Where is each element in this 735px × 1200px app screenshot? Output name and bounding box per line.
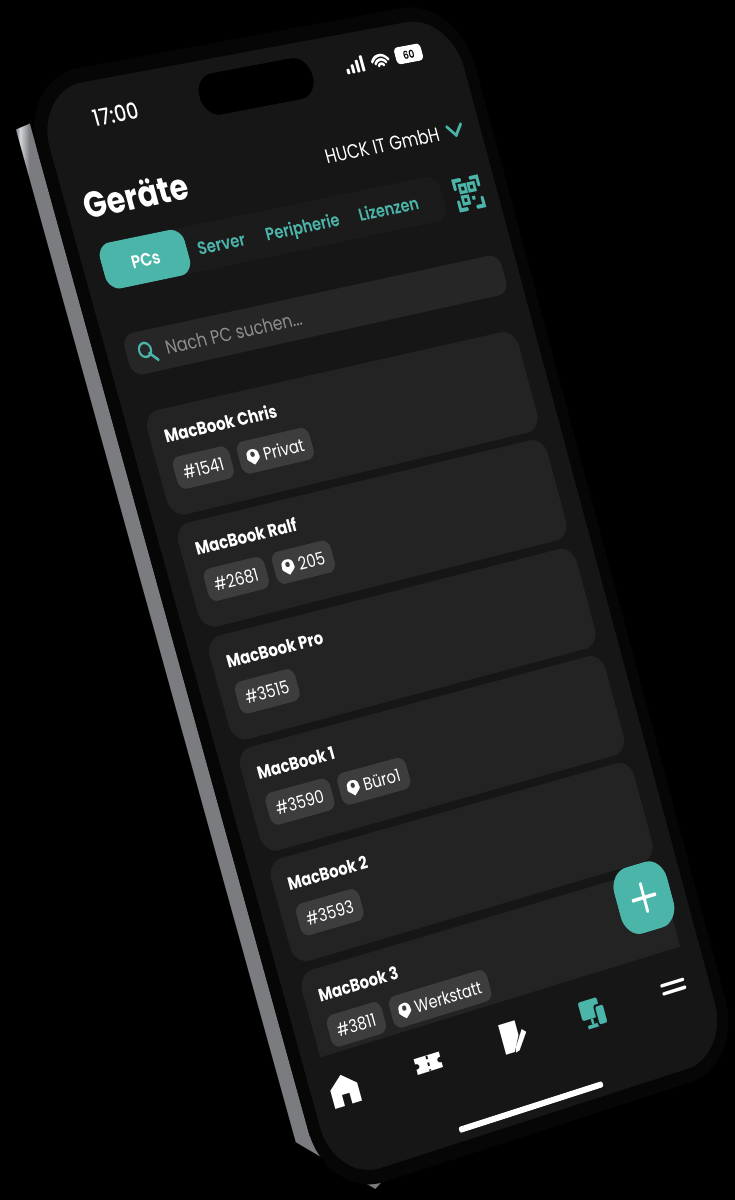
button[interactable]: MacBook Ralf	[20, 398, 440, 494]
staticText: MacBook Ralf	[36, 411, 148, 433]
button[interactable]: PCs	[20, 142, 112, 184]
button[interactable]: Nach PC suchen...	[20, 224, 445, 262]
staticText: PCs	[51, 152, 82, 174]
button[interactable]: Server	[112, 142, 187, 184]
button[interactable]: Gerät hinzufügen	[382, 804, 446, 868]
staticText: MacBook Chris	[36, 308, 159, 330]
button[interactable]: Lizenzen	[292, 142, 383, 184]
button[interactable]: HUCK IT GmbH	[284, 93, 442, 118]
button[interactable]: Menü	[392, 896, 448, 952]
button[interactable]: MacBook 1	[20, 605, 440, 701]
staticText: #1541	[45, 343, 89, 365]
button[interactable]: MacBook Pro	[20, 502, 440, 598]
staticText: Lizenzen	[303, 152, 372, 174]
button[interactable]: Aufträge	[201, 896, 257, 952]
staticText: MacBook Pro	[36, 515, 143, 537]
staticText: Nach PC suchen...	[62, 231, 212, 255]
staticText: Privat	[133, 343, 178, 365]
button[interactable]: MacBook Chris	[20, 295, 440, 391]
staticText: Büro1	[143, 653, 185, 675]
button[interactable]: MacBook 3	[20, 812, 440, 908]
staticText: Geräte	[18, 84, 131, 129]
staticText: 205	[138, 446, 168, 468]
button[interactable]: Geräte	[297, 896, 353, 952]
staticText: HUCK IT GmbH	[284, 93, 415, 118]
button[interactable]: MacBook 2	[20, 708, 440, 804]
